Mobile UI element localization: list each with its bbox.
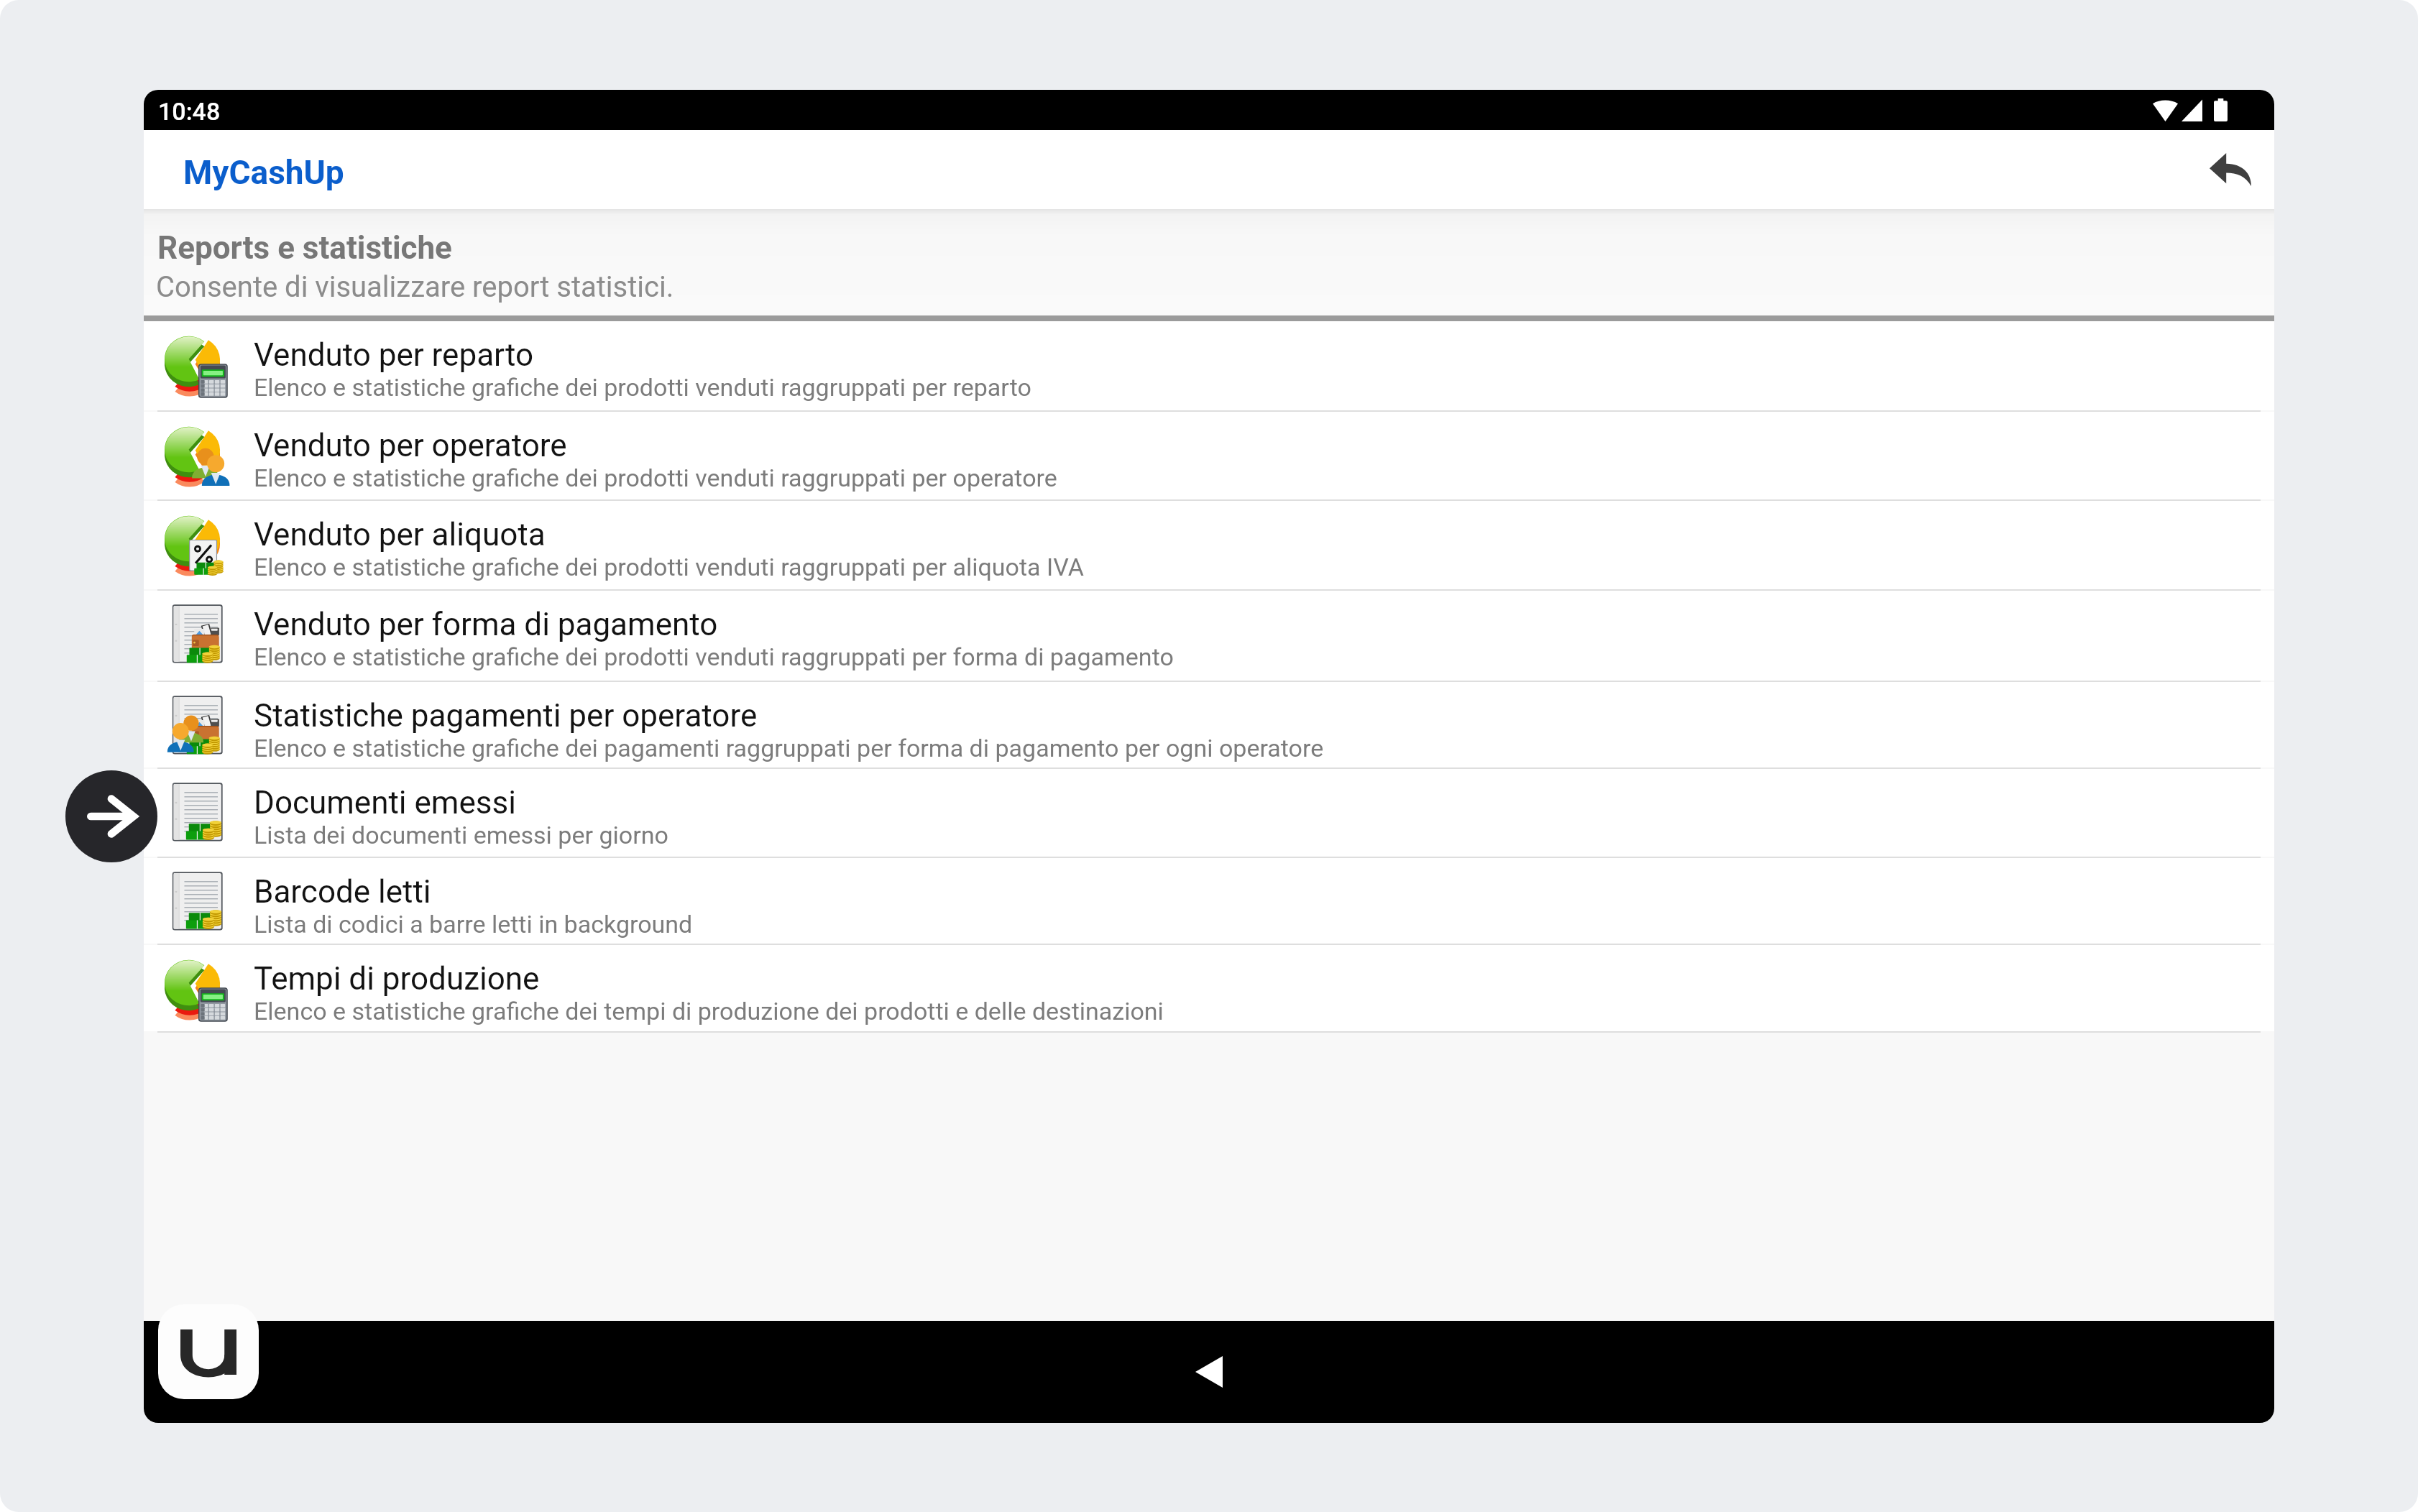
- staticText: Tempi di produzione: [254, 960, 540, 997]
- button[interactable]: Venduto per operatore: [144, 412, 2274, 501]
- staticText: MyCashUp: [183, 153, 344, 192]
- staticText: Venduto per aliquota: [254, 516, 546, 553]
- staticText: Lista dei documenti emessi per giorno: [254, 821, 668, 849]
- staticText: 10:48: [158, 97, 221, 126]
- button[interactable]: Venduto per aliquota: [144, 501, 2274, 591]
- button[interactable]: Avanti: [65, 770, 157, 862]
- staticText: Elenco e statistiche grafiche dei tempi …: [254, 997, 1164, 1025]
- button[interactable]: Statistiche pagamenti per operatore: [144, 682, 2274, 769]
- staticText: Consente di visualizzare report statisti…: [156, 270, 674, 304]
- staticText: Elenco e statistiche grafiche dei prodot…: [254, 464, 1057, 492]
- staticText: Statistiche pagamenti per operatore: [254, 697, 758, 734]
- button[interactable]: Indietro: [2196, 135, 2265, 204]
- button[interactable]: Back: [1166, 1329, 1252, 1415]
- button[interactable]: App logo: [158, 1304, 259, 1399]
- button[interactable]: Documenti emessi: [144, 769, 2274, 858]
- staticText: Venduto per reparto: [254, 336, 534, 374]
- staticText: Venduto per operatore: [254, 427, 567, 464]
- staticText: Elenco e statistiche grafiche dei prodot…: [254, 553, 1084, 581]
- button[interactable]: Tempi di produzione: [144, 945, 2274, 1033]
- staticText: Reports e statistiche: [157, 229, 452, 267]
- button[interactable]: Venduto per forma di pagamento: [144, 591, 2274, 682]
- button[interactable]: Barcode letti: [144, 858, 2274, 945]
- button[interactable]: Venduto per reparto: [144, 321, 2274, 412]
- staticText: Lista di codici a barre letti in backgro…: [254, 910, 693, 939]
- staticText: Elenco e statistiche grafiche dei pagame…: [254, 734, 1324, 762]
- staticText: Venduto per forma di pagamento: [254, 606, 718, 643]
- staticText: Elenco e statistiche grafiche dei prodot…: [254, 642, 1174, 671]
- staticText: Documenti emessi: [254, 784, 516, 821]
- staticText: Elenco e statistiche grafiche dei prodot…: [254, 373, 1031, 402]
- staticText: Barcode letti: [254, 873, 431, 911]
